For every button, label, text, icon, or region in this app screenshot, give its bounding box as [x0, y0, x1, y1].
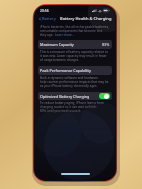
staticText: Maximum Capacity — [40, 42, 74, 47]
staticText: charging routine so it can wait to finis… — [40, 105, 110, 109]
staticText: This is a measure of battery capacity re… — [40, 50, 110, 54]
staticText: they age. — [40, 33, 55, 37]
staticText: Optimized Battery Charging — [40, 94, 90, 99]
staticText: 20:56 — [40, 8, 49, 13]
button[interactable]: Optimized Battery Charging, on — [99, 93, 110, 99]
other: Back — [39, 17, 41, 21]
staticText: 80% until you need to use it. — [40, 109, 82, 113]
staticText: Peak Performance Capability — [40, 68, 91, 73]
staticText: of usage between charges. — [40, 58, 80, 62]
staticText: iPhone batteries, like all rechargeable … — [40, 25, 110, 29]
staticText: Built-in dynamic software and hardware s… — [40, 76, 110, 80]
button[interactable]: Learn more... — [55, 33, 75, 37]
button[interactable]: Back — [38, 16, 57, 21]
button[interactable]: Optimized Battery Charging — [38, 92, 112, 100]
staticText: Battery — [42, 16, 56, 21]
staticText: 83% — [102, 42, 110, 47]
staticText: consumable components that become less e… — [40, 29, 110, 33]
staticText: help counter performance impacts that ma… — [40, 80, 110, 84]
staticText: as your iPhone battery chemically ages. — [40, 84, 98, 88]
staticText: To reduce battery aging, iPhone learns f… — [40, 101, 110, 105]
staticText: Battery Health & Charging — [60, 16, 112, 21]
staticText: it was new. Lower capacity may result in… — [40, 54, 110, 58]
button[interactable]: Peak Performance Capability — [38, 66, 112, 75]
button[interactable]: Maximum Capacity — [38, 40, 112, 49]
